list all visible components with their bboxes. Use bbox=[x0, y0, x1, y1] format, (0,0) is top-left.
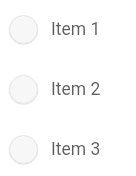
staticText: Item 1 bbox=[51, 19, 101, 40]
staticText: Item 2 bbox=[51, 79, 101, 100]
button[interactable]: Item 2 bbox=[0, 60, 136, 120]
button[interactable]: Item 1 bbox=[0, 0, 136, 60]
staticText: Item 3 bbox=[51, 139, 101, 160]
button[interactable]: Item 3 bbox=[0, 120, 136, 176]
